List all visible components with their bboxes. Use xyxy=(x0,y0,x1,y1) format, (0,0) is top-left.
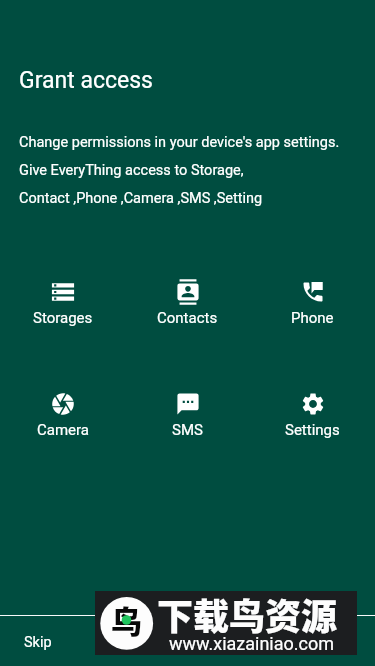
button[interactable]: Settings xyxy=(255,382,370,447)
staticText: Change permissions in your device's app … xyxy=(19,134,340,151)
staticText: Skip xyxy=(24,634,52,651)
staticText: Give EveryThing access to Storage, xyxy=(19,162,244,179)
button[interactable]: Storages xyxy=(5,270,120,335)
staticText: Grant access xyxy=(19,67,153,94)
staticText: Settings xyxy=(285,421,340,439)
staticText: Camera xyxy=(37,421,89,439)
button[interactable]: Contacts xyxy=(130,270,245,335)
button[interactable]: SMS xyxy=(130,382,245,447)
staticText: Phone xyxy=(291,309,334,327)
staticText: 下载鸟资源 xyxy=(157,591,338,640)
staticText: SMS xyxy=(172,421,203,439)
staticText: 鸟 xyxy=(111,597,142,642)
staticText: Contact ,Phone ,Camera ,SMS ,Setting xyxy=(19,190,263,207)
staticText: www.xiazainiao.com xyxy=(169,633,335,654)
button[interactable]: Camera xyxy=(5,382,120,447)
staticText: Storages xyxy=(33,309,93,327)
button[interactable]: Phone xyxy=(255,270,370,335)
button[interactable]: Skip xyxy=(0,616,375,666)
staticText: Contacts xyxy=(157,309,218,327)
